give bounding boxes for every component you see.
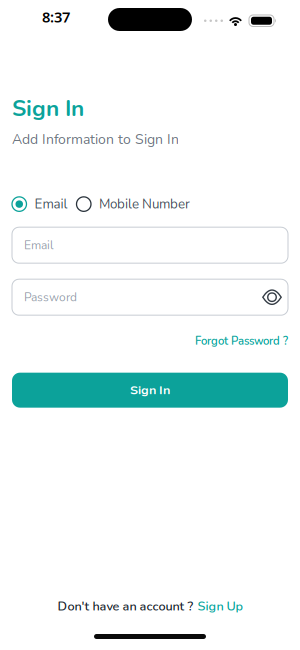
staticText: Password — [24, 289, 77, 305]
button[interactable]: Forgot Password ? — [195, 333, 288, 349]
button[interactable]: Show password — [262, 289, 282, 306]
staticText: Sign Up — [197, 598, 242, 615]
button[interactable]: Mobile Number — [76, 195, 190, 213]
button[interactable]: Don't have an account ? — [57, 598, 242, 615]
button[interactable]: Sign In — [12, 373, 288, 408]
staticText: Add Information to Sign In — [12, 130, 179, 149]
staticText: Email — [24, 237, 54, 253]
staticText: 8:37 — [42, 7, 70, 26]
staticText: Email — [34, 195, 67, 213]
staticText: Don't have an account ? — [57, 598, 193, 615]
button[interactable]: Email — [12, 195, 67, 213]
staticText: Mobile Number — [99, 195, 190, 213]
staticText: Sign In — [12, 93, 84, 124]
staticText: Sign In — [130, 381, 170, 399]
staticText: Forgot Password ? — [195, 333, 288, 349]
